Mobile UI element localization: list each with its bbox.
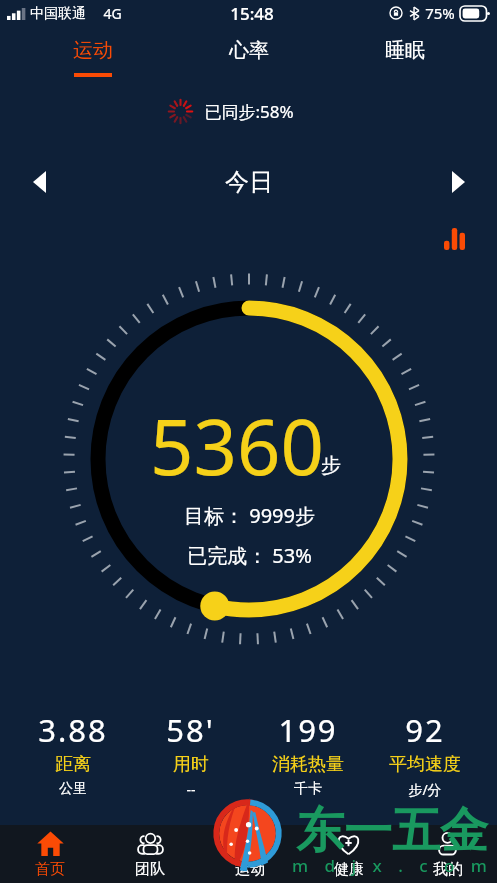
button[interactable]: 我的: [398, 830, 497, 879]
button[interactable]: 199: [249, 709, 366, 798]
staticText: 公里: [59, 780, 87, 798]
button[interactable]: 睡眠: [327, 26, 483, 110]
button[interactable]: Next day: [438, 162, 478, 202]
staticText: 199: [278, 709, 338, 751]
staticText: m d j x . c o m: [292, 854, 493, 877]
staticText: --: [186, 780, 196, 799]
button[interactable]: 运动: [14, 26, 171, 110]
button[interactable]: 92: [366, 709, 483, 799]
staticText: 4G: [103, 4, 122, 23]
button[interactable]: Previous day: [19, 162, 59, 202]
staticText: 千卡: [294, 780, 322, 798]
staticText: 团队: [135, 860, 165, 879]
staticText: 运动: [73, 38, 113, 63]
button[interactable]: 健康: [299, 830, 398, 879]
staticText: 中国联通: [30, 5, 86, 23]
staticText: 首页: [35, 860, 65, 879]
button[interactable]: Statistics: [438, 223, 470, 255]
staticText: 睡眠: [385, 38, 425, 63]
button[interactable]: 3.88: [14, 709, 132, 798]
staticText: 运动: [235, 860, 265, 879]
button[interactable]: 运动: [200, 830, 299, 879]
staticText: 目标： 9999步: [184, 502, 315, 529]
button[interactable]: 首页: [0, 830, 100, 879]
staticText: 92: [405, 709, 445, 751]
staticText: 距离: [55, 753, 91, 776]
staticText: 步: [321, 453, 341, 478]
staticText: 消耗热量: [272, 753, 344, 776]
staticText: 5360: [150, 394, 324, 498]
staticText: 步/分: [408, 780, 442, 799]
button[interactable]: 58': [132, 709, 249, 799]
staticText: 我的: [433, 860, 463, 879]
staticText: 今日: [225, 167, 273, 197]
staticText: 已完成： 53%: [187, 542, 312, 569]
button[interactable]: 团队: [100, 830, 200, 879]
staticText: 3.88: [38, 709, 108, 751]
staticText: 健康: [334, 860, 364, 879]
staticText: 东一五金: [296, 801, 488, 861]
staticText: 58': [166, 709, 215, 751]
button[interactable]: 心率: [171, 26, 327, 110]
staticText: 已同步:58%: [204, 100, 294, 123]
staticText: 用时: [173, 753, 209, 776]
staticText: 15:48: [230, 2, 274, 25]
staticText: 平均速度: [389, 753, 461, 776]
staticText: 心率: [229, 38, 269, 63]
staticText: 75%: [425, 3, 455, 23]
